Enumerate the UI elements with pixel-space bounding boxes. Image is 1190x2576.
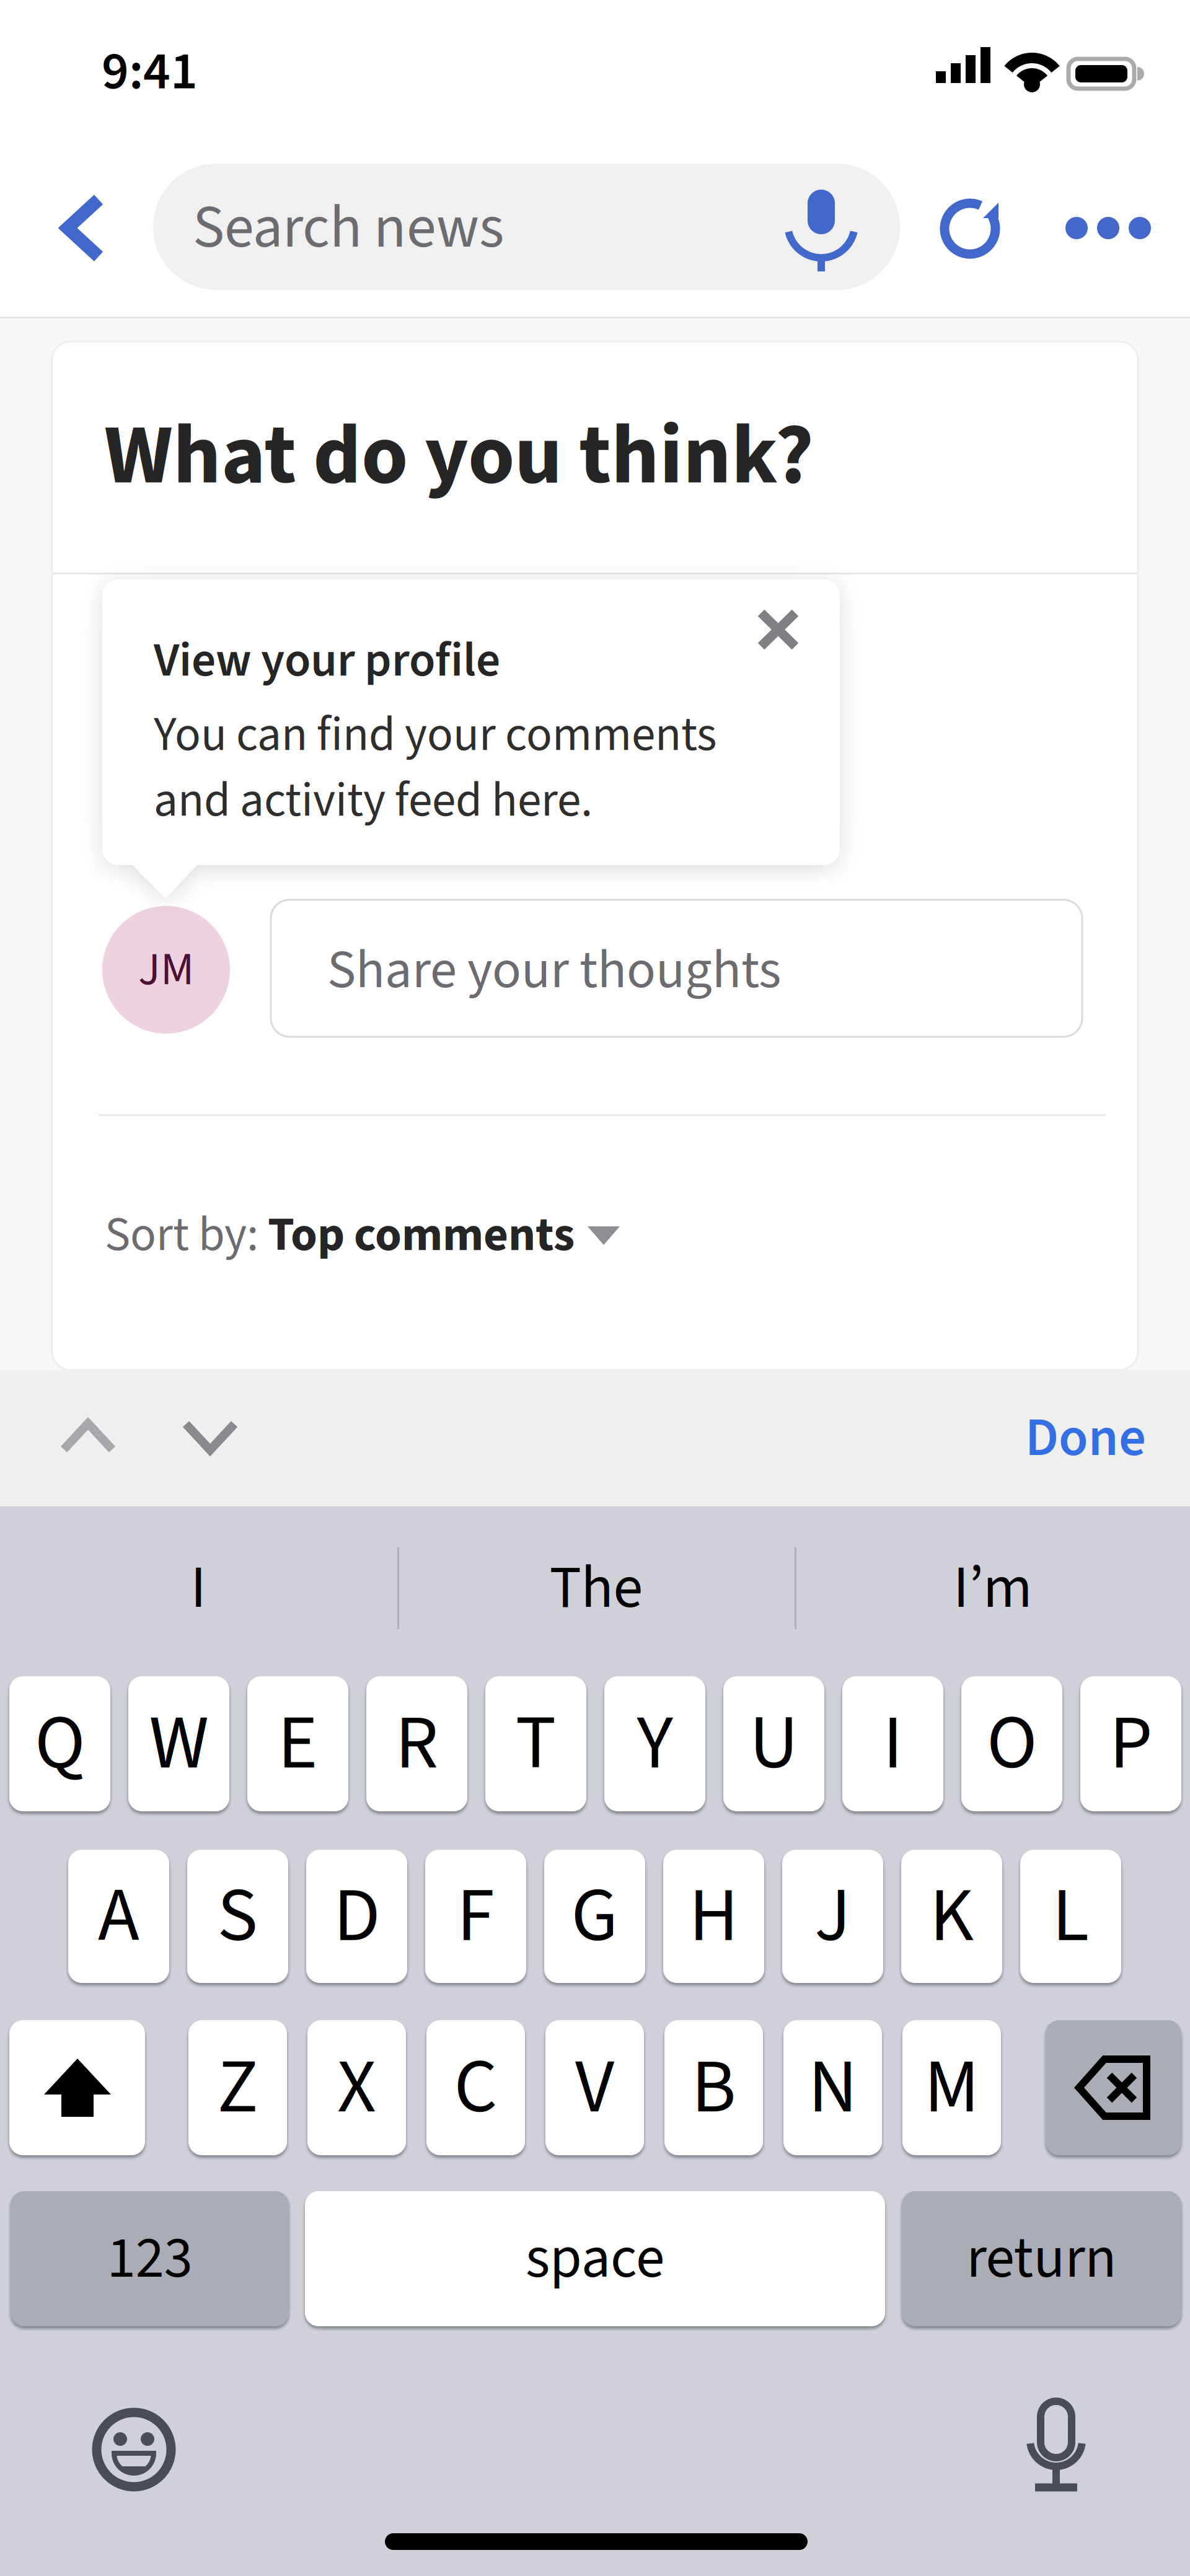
staticText: 9:41 [102, 35, 198, 109]
button[interactable] [0, 0, 1190, 2576]
staticText: R [395, 1691, 439, 1797]
staticText: L [1052, 1864, 1089, 1969]
button[interactable] [0, 0, 1190, 2576]
staticText: Top comments [268, 1202, 575, 1268]
staticText: B [691, 2035, 736, 2140]
staticText: M [924, 2035, 979, 2140]
staticText: Share your thoughts [327, 933, 781, 1008]
button[interactable] [0, 0, 1190, 2576]
staticText: Q [35, 1691, 85, 1797]
staticText: H [689, 1864, 738, 1969]
staticText: W [149, 1691, 209, 1797]
button[interactable] [0, 0, 1190, 2576]
staticText: F [457, 1864, 495, 1969]
button[interactable] [0, 0, 1190, 2576]
button[interactable]: Back [0, 0, 1190, 2576]
button[interactable] [0, 0, 1190, 2576]
staticText: Z [217, 2035, 258, 2140]
staticText: V [575, 2035, 614, 2140]
button[interactable] [0, 0, 1190, 2576]
button[interactable] [0, 0, 1190, 2576]
button[interactable] [0, 0, 1190, 2576]
staticText: K [930, 1864, 974, 1969]
staticText: A [98, 1864, 139, 1969]
staticText: space [526, 2219, 664, 2299]
button[interactable] [0, 0, 1190, 2576]
staticText: and activity feed here. [154, 767, 593, 834]
button[interactable] [0, 0, 1190, 2576]
button[interactable] [0, 0, 1190, 2576]
button[interactable] [0, 0, 1190, 2576]
staticText: N [808, 2035, 857, 2140]
button[interactable] [0, 0, 1190, 2576]
button[interactable]: Next field [0, 0, 1190, 2576]
button[interactable]: Sort by Top comments [0, 0, 1190, 2576]
button[interactable] [0, 0, 1190, 2576]
button[interactable]: Dictation [0, 0, 1190, 2576]
staticText: T [515, 1691, 556, 1797]
staticText: 123 [107, 2219, 192, 2299]
staticText: You can find your comments [154, 702, 716, 768]
button[interactable]: Refresh [0, 0, 1190, 2576]
button[interactable] [0, 0, 1190, 2576]
staticText: S [217, 1864, 258, 1969]
button[interactable] [0, 0, 1190, 2576]
button[interactable] [0, 0, 1190, 2576]
staticText: U [749, 1691, 798, 1797]
staticText: J [814, 1864, 851, 1969]
staticText: Done [1025, 1401, 1146, 1476]
button[interactable]: Close [0, 0, 1190, 2576]
staticText: I [191, 1547, 206, 1630]
staticText: View your profile [154, 627, 500, 694]
button[interactable]: Share your thoughts [0, 0, 1190, 2576]
staticText: What do you think? [104, 398, 814, 515]
staticText: I’m [953, 1547, 1033, 1630]
button[interactable]: More options [0, 0, 1190, 2576]
staticText: I [883, 1691, 903, 1797]
button[interactable]: Previous field [0, 0, 1190, 2576]
staticText: return [967, 2219, 1117, 2299]
button[interactable] [0, 0, 1190, 2576]
button[interactable] [0, 0, 1190, 2576]
staticText: P [1109, 1691, 1152, 1797]
button[interactable] [0, 0, 1190, 2576]
button[interactable]: Shift [0, 0, 1190, 2576]
button[interactable] [0, 0, 1190, 2576]
staticText: C [454, 2035, 497, 2140]
staticText: Search news [193, 187, 504, 269]
button[interactable]: Emoji keyboard [0, 0, 1190, 2576]
button[interactable] [0, 0, 1190, 2576]
staticText: Sort by: [105, 1202, 268, 1268]
button[interactable] [0, 0, 1190, 2576]
button[interactable] [0, 0, 1190, 2576]
button[interactable] [0, 0, 1190, 2576]
staticText: E [278, 1691, 318, 1797]
button[interactable] [0, 0, 1190, 2576]
button[interactable]: Delete [0, 0, 1190, 2576]
staticText: JM [138, 938, 194, 1002]
staticText: The [549, 1547, 643, 1630]
button[interactable] [0, 0, 1190, 2576]
button[interactable] [0, 0, 1190, 2576]
staticText: D [333, 1864, 380, 1969]
button[interactable] [0, 0, 1190, 2576]
staticText: X [337, 2035, 376, 2140]
button[interactable] [0, 0, 1190, 2576]
staticText: G [571, 1864, 618, 1969]
staticText: O [987, 1691, 1037, 1797]
button[interactable]: View your profile [0, 0, 1190, 2576]
staticText: Y [637, 1691, 673, 1797]
button[interactable]: Search news [0, 0, 1190, 2576]
button[interactable] [0, 0, 1190, 2576]
button[interactable] [0, 0, 1190, 2576]
